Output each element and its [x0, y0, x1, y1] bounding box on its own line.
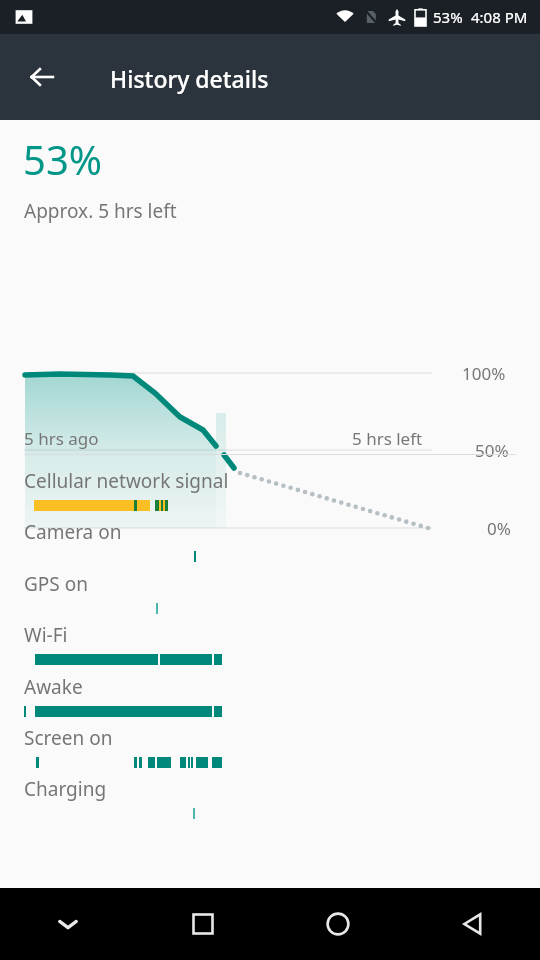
staticText: 5 hrs ago [24, 427, 99, 450]
button[interactable]: Recents [135, 888, 270, 960]
staticText: Awake [24, 674, 83, 700]
staticText: Approx. 5 hrs left [24, 198, 177, 224]
staticText: 0% [487, 517, 511, 540]
staticText: History details [110, 63, 269, 94]
button[interactable]: Charging [0, 770, 540, 821]
staticText: Wi-Fi [24, 622, 68, 648]
button[interactable]: Screen on [0, 719, 540, 770]
staticText: 50% [475, 439, 509, 462]
staticText: Charging [24, 776, 107, 802]
button[interactable]: Home [270, 888, 405, 960]
button[interactable]: Back [405, 888, 540, 960]
staticText: 5 hrs left [352, 427, 423, 450]
staticText: 53% [23, 132, 102, 186]
button[interactable]: Back [14, 49, 70, 105]
staticText: 100% [462, 362, 506, 385]
staticText: 53% [433, 7, 463, 27]
staticText: GPS on [24, 571, 88, 597]
button[interactable]: Cellular network signal [0, 462, 540, 513]
button[interactable]: GPS on [0, 565, 540, 616]
button[interactable]: Awake [0, 668, 540, 719]
staticText: Cellular network signal [24, 468, 229, 494]
staticText: Camera on [24, 519, 122, 545]
button[interactable]: Camera on [0, 513, 540, 564]
staticText: 4:08 PM [471, 7, 528, 27]
button[interactable]: Hide keyboard [0, 888, 135, 960]
staticText: Screen on [24, 725, 113, 751]
button[interactable]: Wi-Fi [0, 616, 540, 667]
